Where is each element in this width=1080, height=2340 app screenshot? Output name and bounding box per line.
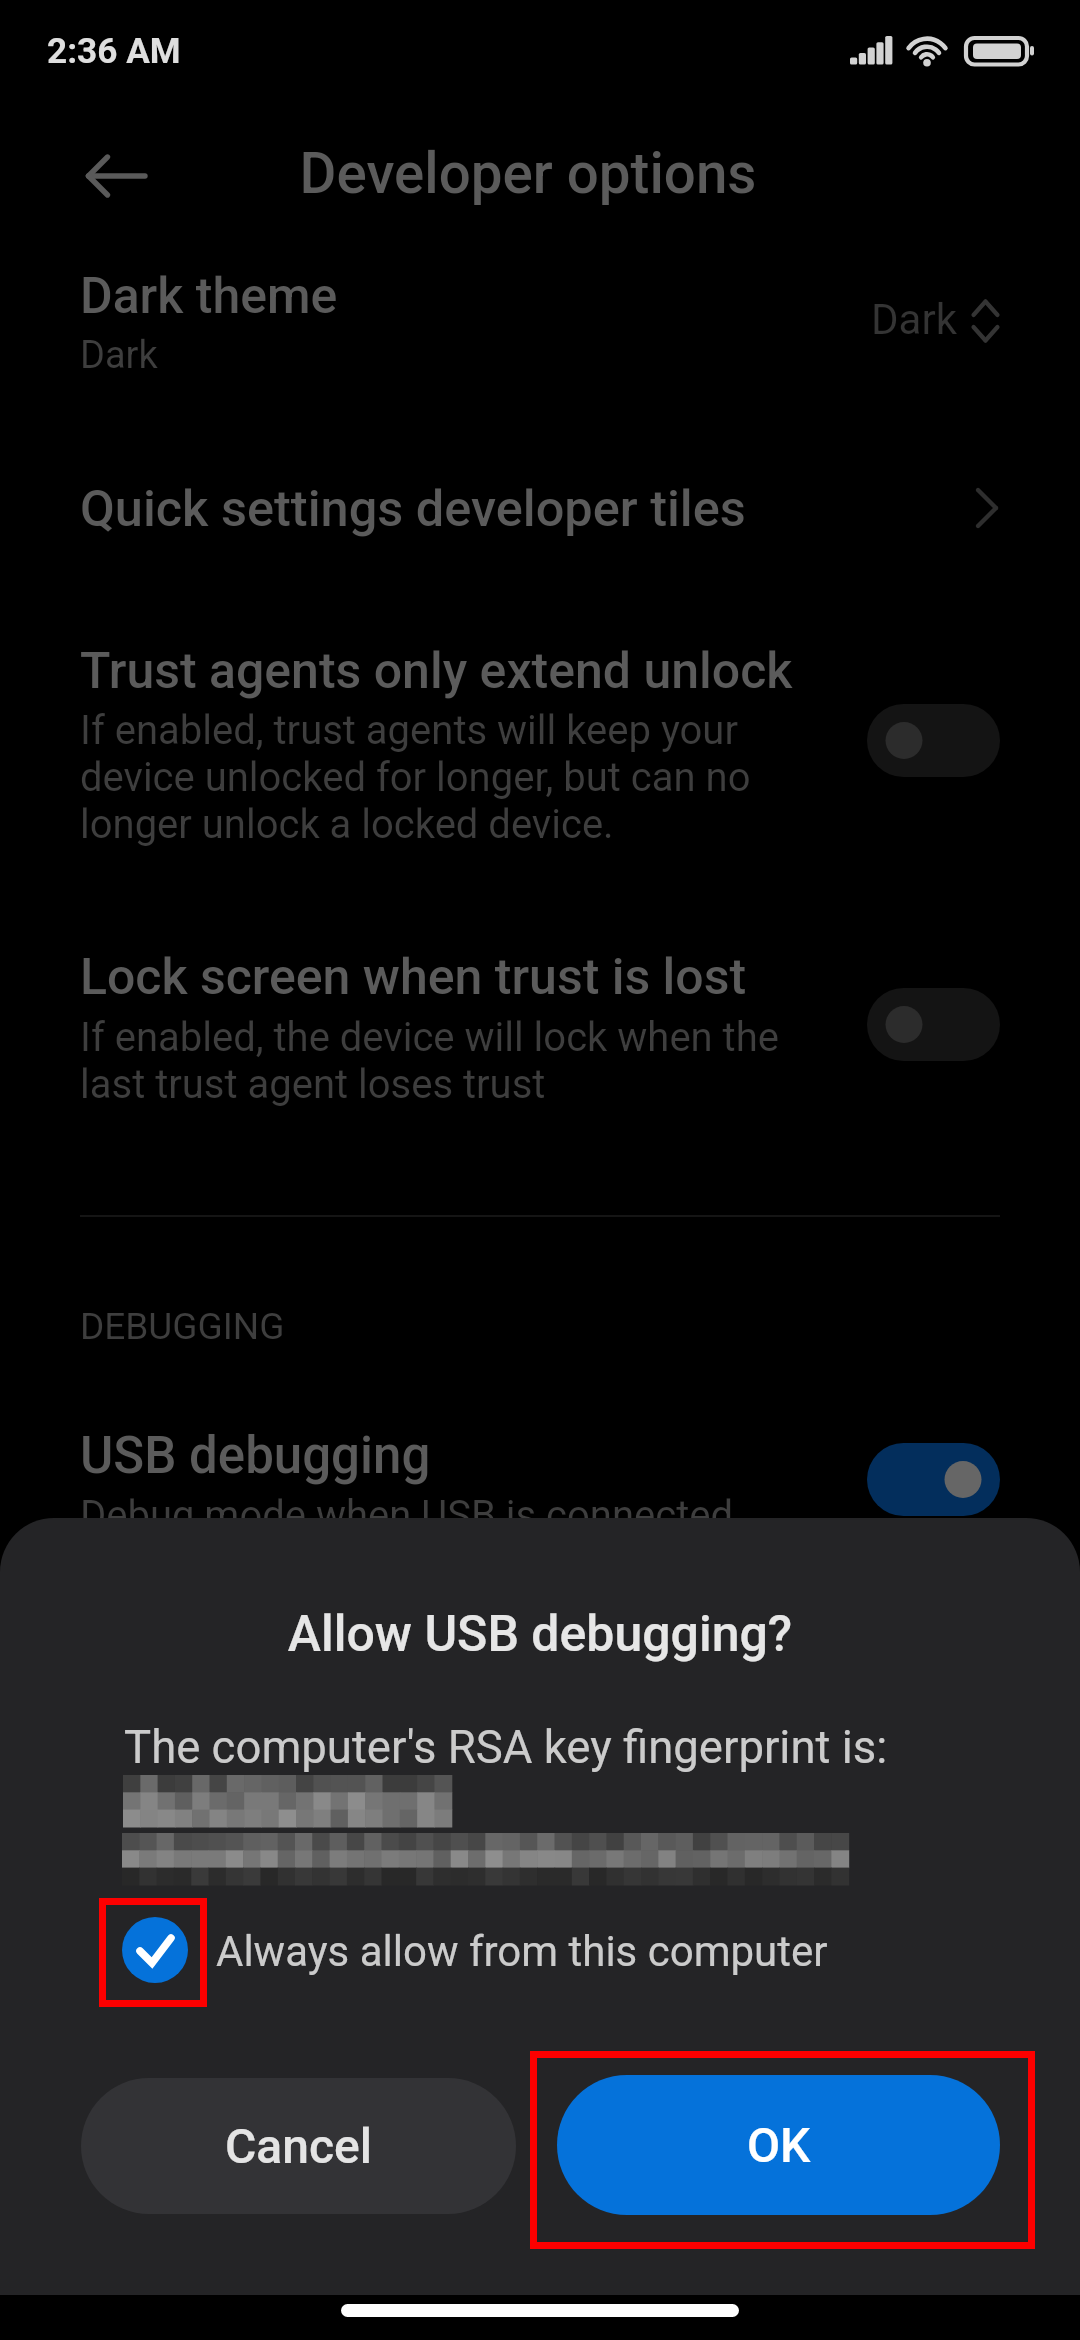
staticText: longer unlock a locked device. <box>80 801 614 848</box>
button[interactable]: Lock screen when trust is lost <box>0 920 1080 1140</box>
staticText: Dark <box>871 295 957 344</box>
button[interactable]: Switch off <box>867 988 1000 1061</box>
staticText: Cancel <box>225 2118 372 2174</box>
staticText: DEBUGGING <box>80 1305 285 1348</box>
staticText: Dark theme <box>80 267 338 326</box>
button[interactable]: Always allow from this computer <box>110 1905 200 1995</box>
staticText: Lock screen when trust is lost <box>80 948 747 1007</box>
button[interactable]: Quick settings developer tiles <box>0 455 1080 585</box>
staticText: If enabled, trust agents will keep your <box>80 707 738 754</box>
staticText: The computer's RSA key fingerprint is: <box>124 1721 888 1774</box>
button[interactable]: USB debugging <box>0 1400 1080 1550</box>
staticText: Trust agents only extend unlock <box>80 642 793 701</box>
staticText: Developer options <box>0 141 1068 207</box>
button[interactable]: Dark theme <box>0 240 1080 400</box>
staticText: OK <box>747 2117 811 2173</box>
button[interactable]: Cancel <box>81 2078 516 2214</box>
button[interactable]: Back <box>56 124 160 228</box>
button[interactable]: Switch on <box>867 1443 1000 1516</box>
staticText: Quick settings developer tiles <box>80 479 746 538</box>
staticText: device unlocked for longer, but can no <box>80 754 751 801</box>
button[interactable]: Switch off <box>867 704 1000 777</box>
button[interactable]: Trust agents only extend unlock <box>0 615 1080 875</box>
staticText: last trust agent loses trust <box>80 1061 546 1108</box>
staticText: USB debugging <box>80 1426 431 1486</box>
staticText: Dark <box>80 333 158 378</box>
staticText: Debug mode when USB is connected <box>80 1492 734 1539</box>
button[interactable]: OK <box>557 2075 1000 2215</box>
staticText: 2:36 AM <box>47 30 181 71</box>
staticText: Allow USB debugging? <box>0 1605 1080 1664</box>
staticText: Always allow from this computer <box>216 1927 828 1976</box>
staticText: If enabled, the device will lock when th… <box>80 1014 779 1061</box>
